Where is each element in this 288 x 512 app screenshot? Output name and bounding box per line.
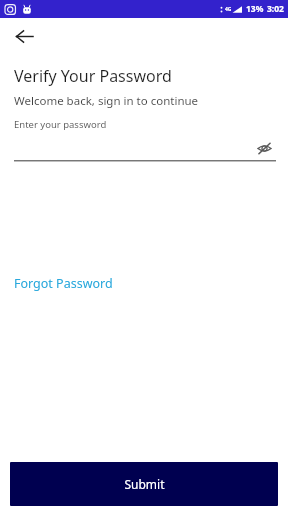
staticText: Submit: [124, 476, 165, 492]
button[interactable]: Back: [11, 23, 38, 50]
button[interactable]: Show password: [14, 136, 274, 160]
staticText: Verify Your Password: [14, 65, 172, 87]
staticText: Welcome back, sign in to continue: [14, 93, 199, 109]
staticText: Forgot Password: [14, 275, 113, 292]
staticText: Enter your password: [14, 118, 107, 131]
button[interactable]: Forgot Password: [14, 273, 113, 294]
staticText: 4G: [225, 6, 232, 13]
staticText: 13%: [246, 3, 264, 15]
staticText: 3:02: [267, 3, 284, 15]
button[interactable]: Submit: [10, 462, 278, 506]
button[interactable]: Show password: [254, 138, 274, 158]
